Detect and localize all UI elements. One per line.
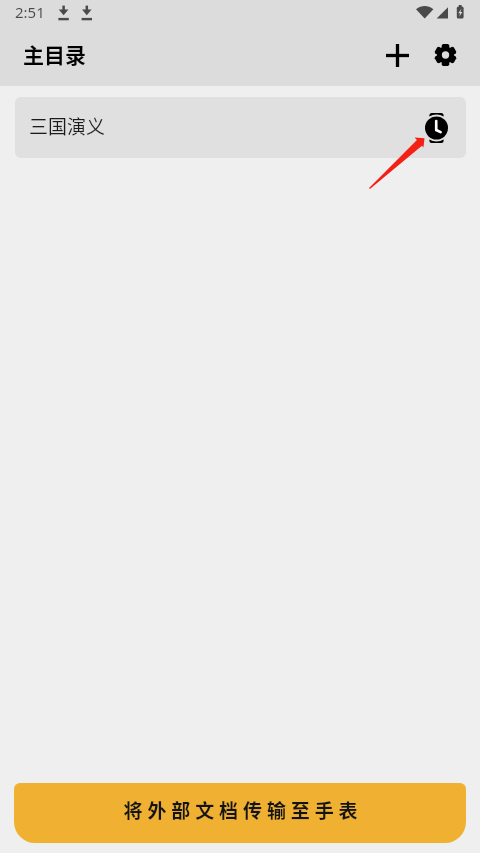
button[interactable]: 三国演义 xyxy=(15,97,466,158)
button[interactable]: Send to watch xyxy=(419,111,453,145)
staticText: 三国演义 xyxy=(29,112,106,140)
button[interactable]: Settings xyxy=(423,32,468,77)
staticText: 将外部文档传输至手表 xyxy=(123,796,363,824)
staticText: 2:51 xyxy=(15,2,45,22)
staticText: 主目录 xyxy=(23,39,86,69)
button[interactable]: 将外部文档传输至手表 xyxy=(14,783,466,843)
button[interactable]: Add xyxy=(375,33,420,78)
